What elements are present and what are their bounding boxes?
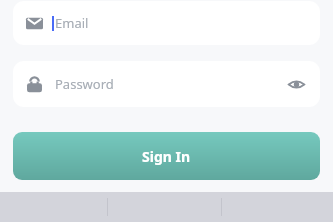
- staticText: Password: [55, 75, 114, 93]
- button[interactable]: Email: [13, 1, 320, 45]
- button[interactable]: Show password: [283, 71, 309, 97]
- button[interactable]: Password: [13, 61, 320, 107]
- button[interactable]: Sign In: [13, 132, 320, 180]
- staticText: Sign In: [142, 147, 191, 166]
- staticText: Email: [55, 14, 89, 32]
